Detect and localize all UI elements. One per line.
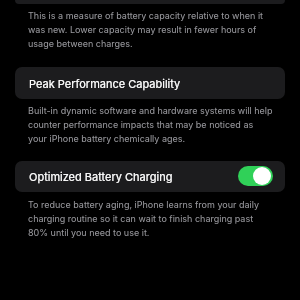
- staticText: Optimized Battery Charging: [29, 170, 173, 183]
- staticText: This is a measure of battery capacity re…: [28, 10, 286, 49]
- button[interactable]: Peak Performance Capability: [15, 67, 285, 99]
- button[interactable]: Optimized Battery Charging, on: [238, 166, 273, 186]
- button[interactable]: Optimized Battery Charging: [15, 161, 285, 192]
- staticText: Built-in dynamic software and hardware s…: [28, 105, 286, 144]
- staticText: Peak Performance Capability: [29, 77, 181, 90]
- staticText: To reduce battery aging, iPhone learns f…: [28, 199, 286, 238]
